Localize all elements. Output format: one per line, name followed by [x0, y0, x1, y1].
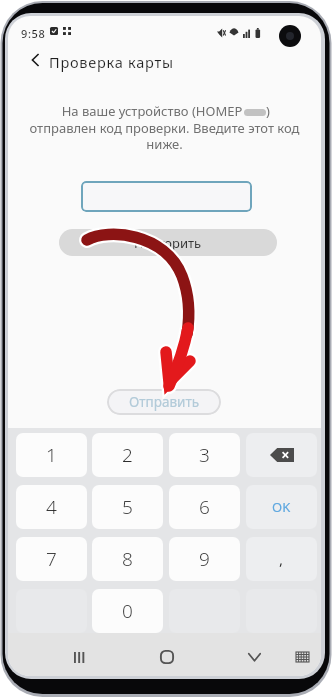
button[interactable]: 1 — [16, 433, 87, 477]
button[interactable] — [81, 181, 252, 212]
button[interactable]: 7 — [16, 537, 87, 581]
button[interactable]: Change keyboard — [284, 642, 321, 672]
button[interactable]: 0 — [92, 589, 163, 633]
button[interactable]: 2 — [92, 433, 163, 477]
staticText: 2 — [122, 442, 133, 468]
button[interactable]: 8 — [92, 537, 163, 581]
staticText: Проверка карты — [49, 52, 174, 72]
staticText: OK — [272, 498, 291, 516]
button[interactable]: 3 — [169, 433, 240, 477]
staticText: 9 — [199, 546, 210, 572]
button[interactable]: , — [246, 537, 317, 581]
staticText: 9:58 — [21, 26, 46, 41]
button[interactable]: 6 — [169, 485, 240, 529]
button[interactable]: OK — [246, 485, 317, 529]
staticText: Отправить — [129, 393, 200, 411]
button[interactable]: Повторить — [59, 229, 277, 256]
button[interactable]: Recent apps — [58, 642, 100, 672]
staticText: 4 — [46, 494, 57, 520]
staticText: , — [279, 549, 284, 569]
button[interactable]: 9 — [169, 537, 240, 581]
staticText: 0 — [122, 598, 133, 624]
staticText: отправлен код проверки. Введите этот код… — [8, 119, 321, 152]
staticText: 8 — [122, 546, 133, 572]
button[interactable]: Back — [24, 49, 46, 71]
staticText: 3 — [199, 442, 210, 468]
button[interactable]: Backspace — [246, 433, 317, 477]
button[interactable]: Отправить — [107, 389, 221, 415]
staticText: ) — [266, 102, 270, 120]
staticText: На ваше устройство (НОМЕР — [60, 102, 244, 120]
staticText: 7 — [46, 546, 57, 572]
staticText: 1 — [46, 442, 57, 468]
staticText: Повторить — [134, 234, 202, 252]
button[interactable]: 4 — [16, 485, 87, 529]
staticText: 5 — [122, 494, 133, 520]
button[interactable]: Home — [146, 642, 188, 672]
button[interactable]: Hide keyboard — [233, 642, 275, 672]
staticText: 6 — [199, 494, 210, 520]
button[interactable]: 5 — [92, 485, 163, 529]
